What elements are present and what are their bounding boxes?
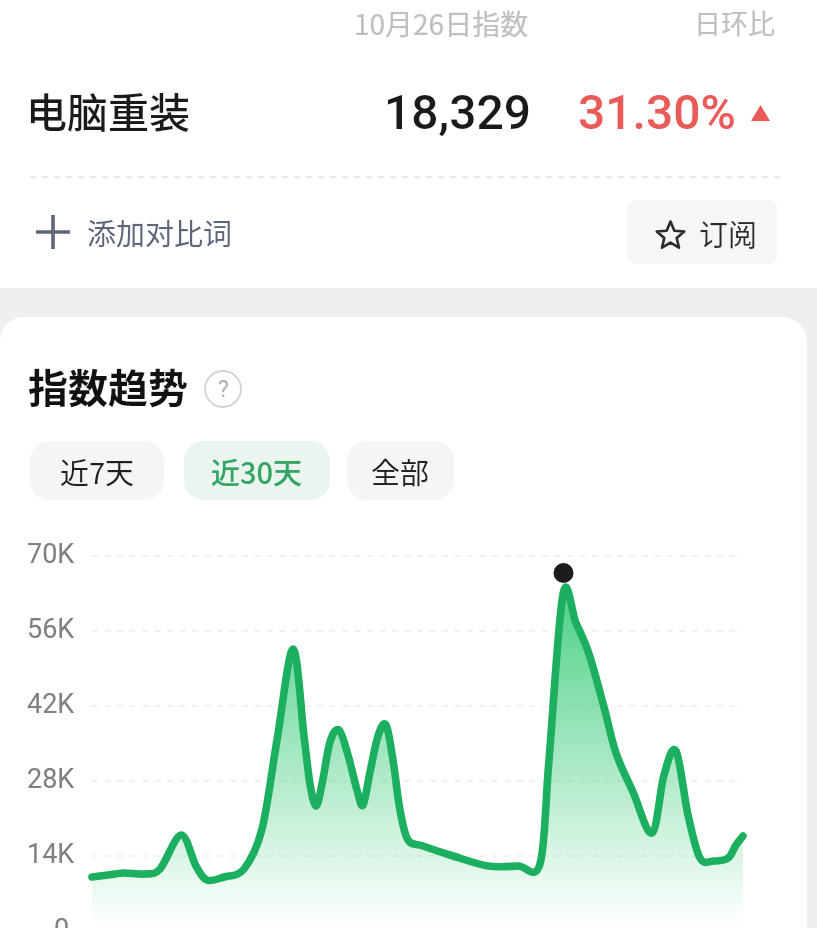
button[interactable]: 近30天 bbox=[184, 441, 330, 500]
button[interactable]: 近7天 bbox=[30, 441, 164, 500]
button[interactable]: 订阅 bbox=[627, 200, 777, 264]
staticText: 近7天 bbox=[60, 450, 135, 492]
staticText: 近30天 bbox=[211, 450, 303, 492]
staticText: 0 bbox=[54, 913, 70, 928]
staticText: 70K bbox=[27, 538, 75, 570]
staticText: 42K bbox=[27, 688, 75, 720]
button[interactable]: 全部 bbox=[347, 441, 454, 500]
button[interactable]: 添加对比词 bbox=[30, 203, 239, 261]
staticText: 28K bbox=[27, 763, 75, 795]
staticText: 14K bbox=[27, 838, 75, 870]
staticText: 18,329 bbox=[384, 84, 531, 140]
staticText: ? bbox=[218, 376, 229, 403]
staticText: 56K bbox=[27, 613, 75, 645]
staticText: 10月26日指数 bbox=[354, 3, 529, 44]
staticText: 电脑重装 bbox=[26, 80, 190, 139]
staticText: 日环比 bbox=[694, 3, 775, 42]
staticText: 指数趋势 bbox=[28, 357, 188, 415]
staticText: 订阅 bbox=[699, 212, 758, 254]
staticText: 全部 bbox=[371, 450, 430, 492]
button[interactable]: 帮助 bbox=[204, 370, 242, 408]
staticText: 添加对比词 bbox=[87, 211, 233, 253]
staticText: 31.30% bbox=[578, 84, 736, 140]
